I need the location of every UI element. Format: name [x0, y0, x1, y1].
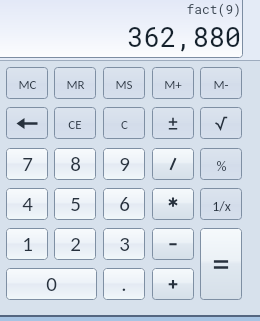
button[interactable]: 7 [6, 148, 48, 180]
button[interactable]: 1 [6, 228, 48, 260]
staticText: M- [213, 77, 229, 93]
button[interactable]: Backspace [6, 107, 48, 139]
staticText: 5 [70, 191, 81, 217]
staticText: 0 [46, 271, 57, 297]
staticText: MS [115, 77, 133, 93]
button[interactable]: 4 [6, 188, 48, 220]
staticText: fact(9) [0, 0, 241, 17]
button[interactable]: Multiply [152, 188, 194, 220]
button[interactable]: 2 [54, 228, 96, 260]
button[interactable]: 0 [6, 268, 97, 300]
staticText: MC [18, 77, 37, 93]
staticText: 362,880 [0, 19, 241, 55]
button[interactable]: Plus [152, 268, 194, 300]
staticText: C [121, 117, 128, 133]
staticText: % [216, 158, 227, 175]
button[interactable]: Square root [200, 107, 242, 139]
button[interactable]: Minus [152, 228, 194, 260]
staticText: 4 [22, 191, 33, 217]
button[interactable]: MR [54, 67, 96, 99]
staticText: M+ [164, 77, 182, 93]
staticText: 8 [70, 151, 81, 177]
button[interactable]: M+ [152, 67, 194, 99]
button[interactable]: C [103, 107, 145, 139]
button[interactable]: Divide [152, 148, 194, 180]
button[interactable]: 6 [103, 188, 145, 220]
staticText: 7 [22, 151, 33, 177]
staticText: CE [68, 117, 82, 133]
button[interactable]: 5 [54, 188, 96, 220]
staticText: MR [66, 77, 85, 93]
button[interactable]: 8 [54, 148, 96, 180]
staticText: 2 [70, 231, 81, 257]
button[interactable]: MS [103, 67, 145, 99]
staticText: 6 [119, 191, 130, 217]
button[interactable]: M- [200, 67, 242, 99]
button[interactable]: 9 [103, 148, 145, 180]
button[interactable]: MC [6, 67, 48, 99]
button[interactable]: Equals [200, 228, 242, 300]
button[interactable]: 1/x [200, 188, 242, 220]
staticText: 1/x [212, 198, 231, 215]
button[interactable]: % [200, 148, 242, 180]
staticText: 1 [22, 231, 33, 257]
button[interactable]: CE [54, 107, 96, 139]
button[interactable]: Plus minus [152, 107, 194, 139]
staticText: 3 [119, 231, 130, 257]
button[interactable]: 3 [103, 228, 145, 260]
staticText: . [121, 271, 127, 297]
button[interactable]: . [103, 268, 145, 300]
staticText: 9 [119, 151, 130, 177]
